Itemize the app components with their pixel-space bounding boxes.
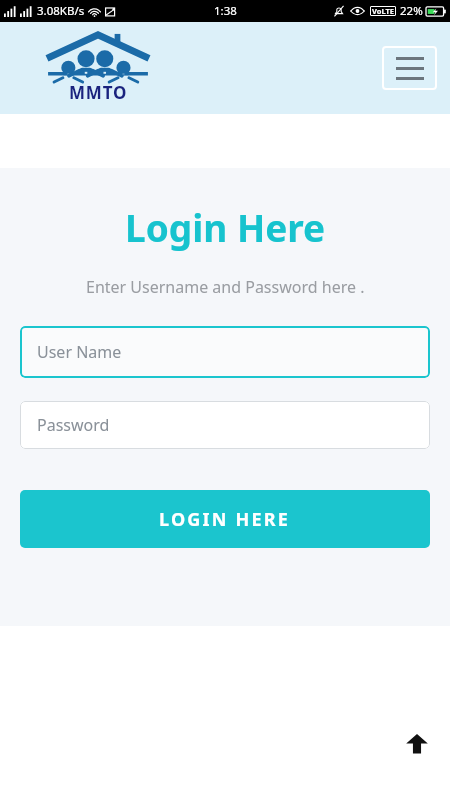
staticText: Enter Username and Password here . — [86, 276, 365, 298]
staticText: LOGIN HERE — [159, 507, 291, 532]
staticText: User Name — [37, 341, 122, 363]
staticText: VoLTE — [372, 6, 394, 16]
staticText: Login Here — [125, 202, 326, 252]
button[interactable]: User Name — [20, 326, 430, 378]
staticText: Password — [37, 414, 110, 436]
staticText: 3.08KB/s — [37, 3, 85, 19]
staticText: 1:38 — [214, 3, 237, 19]
button[interactable]: Password — [20, 401, 430, 449]
button[interactable]: Scroll to top — [402, 728, 432, 758]
button[interactable]: LOGIN HERE — [20, 490, 430, 548]
staticText: MMTO — [69, 81, 128, 104]
button[interactable]: Menu — [382, 46, 437, 90]
staticText: 22% — [400, 3, 423, 19]
